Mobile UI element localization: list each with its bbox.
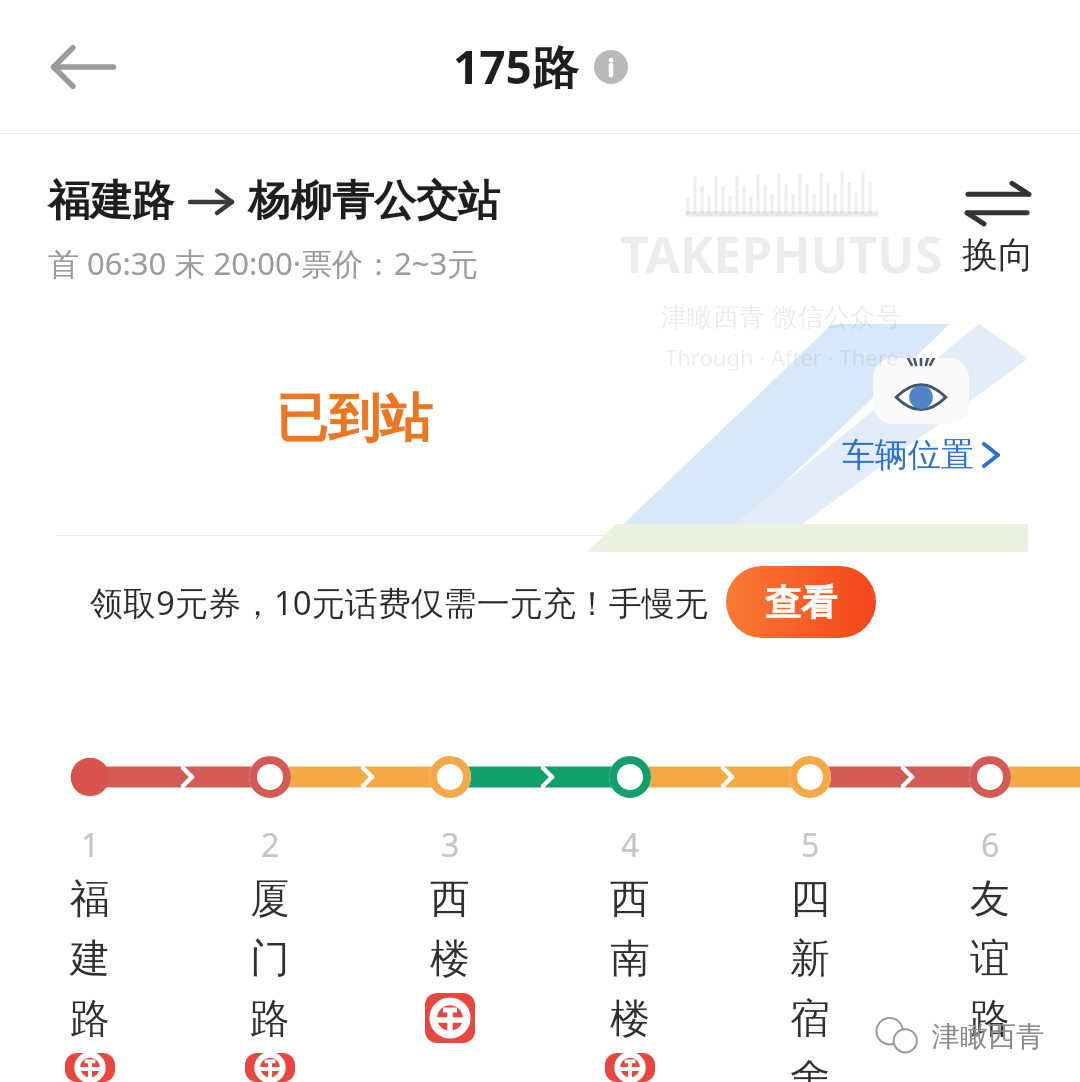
staticText: 杨柳青公交站 [248,175,500,228]
staticText: 津瞰西青 微信公众号 [661,298,902,334]
staticText: 5 [801,823,820,867]
button[interactable]: 车辆位置 [836,352,1006,482]
staticText: 领取9元券，10元话费仅需一元充！手慢无 [90,580,708,625]
staticText: 四 [790,873,830,923]
staticText: 车辆位置 [842,434,974,476]
staticText: 门 [250,933,290,983]
staticText: 查看 [765,580,837,625]
other: Metro station [245,1053,295,1082]
button[interactable]: 换向 [952,176,1044,283]
button[interactable]: Back [38,21,130,113]
staticText: 路 [970,993,1010,1043]
staticText: 友 [970,873,1010,923]
other: Metro station [65,1053,115,1082]
button[interactable]: 西 [360,873,540,1043]
staticText: 首 06:30 末 20:00·票价：2~3元 [48,242,479,284]
staticText: 6 [981,823,1000,867]
button[interactable]: 查看 [726,566,876,638]
staticText: 4 [621,823,640,867]
button[interactable]: 西 [540,873,720,1082]
staticText: 南 [610,933,650,983]
other: Metro station [425,993,475,1043]
staticText: 福 [70,873,110,923]
staticText: 楼 [430,933,470,983]
staticText: 舍 [790,1053,830,1082]
other: Metro station [605,1053,655,1082]
button[interactable]: 厦 [180,873,360,1082]
staticText: 楼 [610,993,650,1043]
button[interactable]: 友 [900,873,1080,1053]
staticText: 西 [610,873,650,923]
staticText: 新 [790,933,830,983]
staticText: 路 [70,993,110,1043]
staticText: 福建路 [48,175,174,228]
staticText: 津瞰西青 [932,1019,1044,1054]
staticText: 换向 [962,232,1034,277]
staticText: 谊 [970,933,1010,983]
staticText: 厦 [250,873,290,923]
staticText: 3 [441,823,460,867]
button[interactable]: 福 [0,873,180,1082]
button[interactable]: Route info [594,50,628,84]
staticText: TAKEPHUTUS [620,220,943,288]
staticText: 宿 [790,993,830,1043]
staticText: 西 [430,873,470,923]
staticText: Through · After · There [665,342,899,372]
button[interactable]: 四 [720,873,900,1082]
staticText: 2 [261,823,280,867]
staticText: 1 [81,823,100,867]
staticText: 已到站 [276,386,432,452]
button[interactable]: 领取9元券，10元话费仅需一元充！手慢无 [48,535,1028,669]
staticText: 175路 [453,35,578,98]
staticText: 建 [70,933,110,983]
staticText: 路 [250,993,290,1043]
